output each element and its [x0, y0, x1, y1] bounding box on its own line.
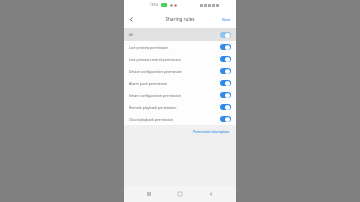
staticText: Remote playback permission — [129, 105, 177, 110]
button[interactable]: Toggle — [220, 68, 231, 74]
button[interactable]: Device configuration permission — [124, 65, 236, 77]
staticText: Sharing rules — [165, 16, 195, 22]
button[interactable]: Recents — [143, 188, 155, 200]
button[interactable]: Toggle — [220, 32, 231, 38]
button[interactable]: Home — [174, 188, 186, 200]
staticText: Next — [222, 17, 231, 22]
button[interactable]: Live preview permission — [124, 41, 236, 53]
staticText: Smart configuration permission — [129, 93, 182, 98]
button[interactable]: Toggle — [220, 44, 231, 50]
staticText: Alarm push permission — [129, 81, 168, 86]
button[interactable]: Remote playback permission — [124, 101, 236, 113]
button[interactable]: Back — [124, 12, 138, 26]
staticText: 18:04 — [150, 3, 159, 7]
staticText: Live preview permission — [129, 45, 169, 50]
button[interactable]: Toggle — [220, 116, 231, 122]
button[interactable]: Cloud playback permission — [124, 113, 236, 125]
button[interactable]: Permission description — [193, 129, 236, 134]
staticText: Cloud playback permission — [129, 117, 174, 122]
button[interactable]: Toggle — [220, 80, 231, 86]
button[interactable]: Toggle — [220, 104, 231, 110]
staticText: All — [129, 32, 134, 37]
button[interactable]: Smart configuration permission — [124, 89, 236, 101]
staticText: Device configuration permission — [129, 69, 183, 74]
staticText: Live preview control permission — [129, 57, 181, 62]
button[interactable]: Alarm push permission — [124, 77, 236, 89]
button[interactable]: Next — [218, 17, 236, 22]
button[interactable]: All — [124, 28, 236, 41]
button[interactable]: Back — [205, 188, 217, 200]
button[interactable]: Live preview control permission — [124, 53, 236, 65]
button[interactable]: Toggle — [220, 56, 231, 62]
button[interactable]: Toggle — [220, 92, 231, 98]
